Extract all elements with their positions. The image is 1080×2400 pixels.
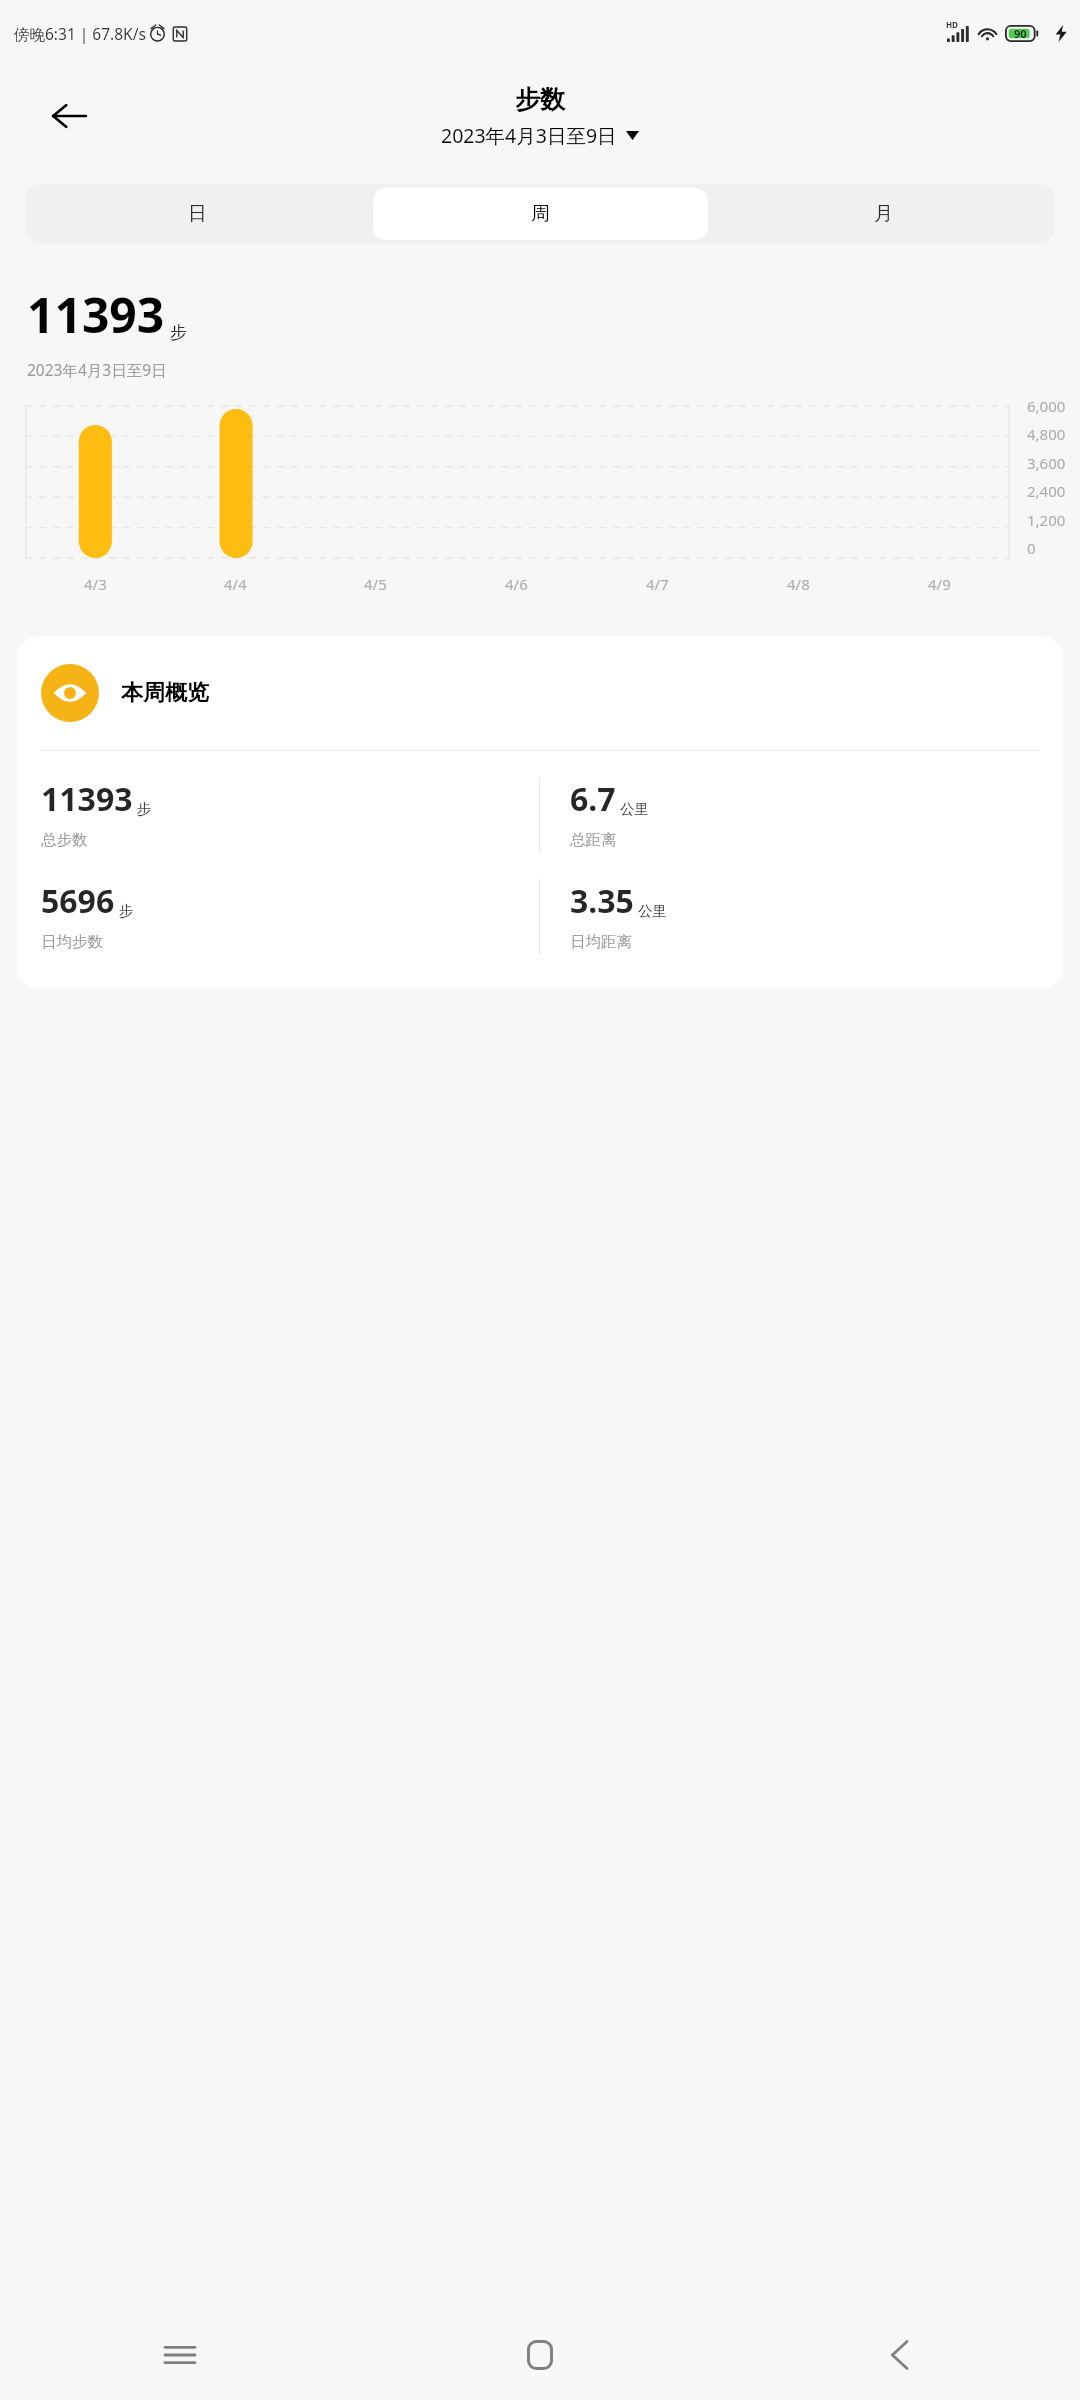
staticText: 步: [119, 902, 134, 920]
staticText: 11393: [27, 282, 165, 347]
staticText: 月: [874, 202, 893, 226]
staticText: 傍晚6:31 | 67.8K/s: [14, 23, 146, 44]
staticText: 公里: [620, 800, 649, 818]
staticText: 2023年4月3日至9日: [441, 122, 617, 149]
staticText: 1,200: [1027, 510, 1066, 530]
staticText: 步: [137, 800, 152, 818]
staticText: 90: [1014, 26, 1027, 41]
staticText: 2,400: [1027, 481, 1066, 501]
staticText: 日均步数: [41, 932, 103, 952]
staticText: 公里: [638, 902, 667, 920]
button[interactable]: 月: [716, 188, 1051, 240]
button[interactable]: Recent apps: [0, 2310, 360, 2400]
staticText: 3,600: [1027, 453, 1066, 473]
button[interactable]: 2023年4月3日至9日: [441, 122, 639, 149]
staticText: 步数: [515, 84, 565, 115]
button[interactable]: Home: [360, 2310, 720, 2400]
staticText: 4/5: [364, 574, 387, 594]
staticText: 4/7: [646, 574, 669, 594]
staticText: HD: [946, 19, 958, 30]
button[interactable]: 日: [29, 188, 365, 240]
staticText: 6.7: [570, 777, 616, 821]
staticText: 3.35: [570, 879, 634, 923]
staticText: 4/4: [224, 574, 247, 594]
staticText: 4/9: [928, 574, 951, 594]
staticText: 6,000: [1027, 396, 1066, 416]
staticText: 总距离: [570, 830, 617, 850]
staticText: 4/8: [787, 574, 810, 594]
staticText: 0: [1027, 538, 1036, 558]
button[interactable]: 周: [373, 188, 708, 240]
staticText: 4/3: [84, 574, 107, 594]
staticText: 周: [531, 202, 550, 226]
staticText: 5696: [41, 879, 115, 923]
staticText: 4,800: [1027, 424, 1066, 444]
staticText: 日: [188, 202, 207, 226]
button[interactable]: 本周概览: [17, 636, 1063, 989]
staticText: 总步数: [41, 830, 88, 850]
staticText: 4/6: [505, 574, 528, 594]
staticText: 2023年4月3日至9日: [27, 359, 167, 380]
staticText: 11393: [41, 777, 133, 821]
staticText: 本周概览: [121, 679, 209, 707]
button[interactable]: Back: [720, 2310, 1080, 2400]
button[interactable]: Back: [40, 87, 98, 145]
staticText: 步: [170, 322, 187, 343]
staticText: 日均距离: [570, 932, 632, 952]
